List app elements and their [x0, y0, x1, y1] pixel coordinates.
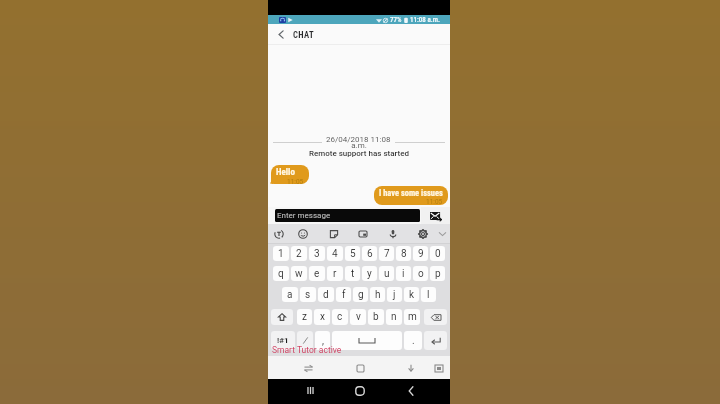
button[interactable]: Keyboard settings [414, 224, 432, 244]
button[interactable]: Switch input method [301, 361, 315, 375]
staticText: 7 [384, 248, 390, 260]
staticText: q [278, 268, 284, 280]
button[interactable]: Recent apps [432, 361, 446, 375]
staticText: p [435, 268, 441, 280]
button[interactable]: Enter message [275, 209, 420, 222]
staticText: 77% [390, 16, 402, 24]
staticText: 4 [332, 248, 338, 260]
button[interactable]: 8 [396, 246, 411, 261]
staticText: 8 [401, 248, 407, 260]
staticText: y [367, 268, 372, 280]
button[interactable]: Back [268, 24, 293, 45]
staticText: u [384, 268, 390, 280]
staticText: r [333, 268, 337, 280]
staticText: !#1 [277, 336, 289, 345]
staticText: a [287, 289, 293, 301]
button[interactable]: m [404, 309, 420, 325]
button[interactable]: Voice input [384, 224, 402, 244]
staticText: Enter message [277, 211, 331, 220]
button[interactable]: Back [402, 379, 420, 402]
button[interactable]: I have some issues [374, 186, 448, 205]
staticText: Remote support has started [268, 149, 450, 158]
button[interactable]: 6 [362, 246, 377, 261]
button[interactable]: 3 [309, 246, 325, 261]
staticText: Hello [276, 167, 295, 178]
button[interactable]: e [309, 266, 325, 281]
button[interactable]: d [318, 287, 334, 302]
button[interactable]: b [368, 309, 384, 325]
button[interactable]: 0 [430, 246, 445, 261]
button[interactable]: Hello [271, 165, 309, 184]
button[interactable]: t [345, 266, 360, 281]
button[interactable]: r [327, 266, 343, 281]
staticText: 2 [296, 248, 302, 260]
button[interactable]: f [336, 287, 351, 302]
staticText: v [356, 311, 361, 323]
button[interactable]: q [273, 266, 289, 281]
button[interactable]: k [404, 287, 419, 302]
button[interactable]: 9 [413, 246, 428, 261]
staticText: 0 [435, 248, 441, 260]
button[interactable]: 2 [291, 246, 307, 261]
button[interactable]: 5 [345, 246, 360, 261]
staticText: x [320, 311, 325, 323]
button[interactable]: Translate [270, 224, 288, 244]
button[interactable]: n [386, 309, 402, 325]
button[interactable]: x [314, 309, 330, 325]
staticText: , [322, 335, 324, 347]
staticText: 26/04/2018 11:08 [322, 135, 395, 144]
button[interactable]: Space [332, 331, 402, 350]
button[interactable]: v [350, 309, 366, 325]
staticText: n [391, 311, 397, 323]
button[interactable]: p [430, 266, 445, 281]
staticText: 3 [314, 248, 320, 260]
button[interactable]: Home [353, 361, 367, 375]
staticText: 6 [367, 248, 373, 260]
staticText: CHAT [293, 30, 314, 40]
button[interactable]: Symbols [271, 331, 295, 350]
button[interactable]: 4 [327, 246, 343, 261]
button[interactable]: i [396, 266, 411, 281]
staticText: h [375, 289, 381, 301]
staticText: m [408, 311, 417, 323]
staticText: 11:08 a.m. [410, 16, 440, 24]
button[interactable]: Recents [301, 379, 319, 402]
staticText: d [323, 289, 329, 301]
button[interactable]: z [297, 309, 312, 325]
button[interactable]: h [370, 287, 385, 302]
staticText: k [409, 289, 415, 301]
button[interactable]: y [362, 266, 377, 281]
button[interactable]: Collapse keyboard toolbar [433, 224, 451, 244]
button[interactable]: 1 [273, 246, 289, 261]
staticText: . [412, 335, 415, 347]
button[interactable]: . [404, 331, 422, 350]
button[interactable]: Clipboard [354, 224, 372, 244]
button[interactable]: j [387, 287, 402, 302]
button[interactable]: w [291, 266, 307, 281]
button[interactable]: Send [421, 207, 450, 224]
button[interactable]: Stickers [325, 224, 343, 244]
button[interactable]: Shift [271, 309, 293, 325]
staticText: a.m. [268, 141, 450, 150]
staticText: I have some issues [379, 188, 443, 198]
button[interactable]: c [332, 309, 348, 325]
button[interactable]: Hide keyboard [404, 361, 418, 375]
button[interactable]: g [353, 287, 368, 302]
button[interactable]: l [421, 287, 436, 302]
staticText: g [358, 289, 364, 301]
button[interactable]: 7 [379, 246, 394, 261]
staticText: 9 [418, 248, 424, 260]
button[interactable]: o [413, 266, 428, 281]
button[interactable]: Home [351, 379, 369, 402]
staticText: f [342, 289, 346, 301]
staticText: e [314, 268, 320, 280]
staticText: 5 [350, 248, 356, 260]
button[interactable]: Backspace [424, 309, 447, 325]
button[interactable]: Enter [424, 331, 447, 350]
button[interactable]: s [300, 287, 316, 302]
button[interactable]: u [379, 266, 394, 281]
button[interactable]: , [315, 331, 330, 350]
button[interactable]: a [282, 287, 298, 302]
button[interactable]: Emoji [294, 224, 312, 244]
button[interactable]: Language [297, 331, 313, 350]
